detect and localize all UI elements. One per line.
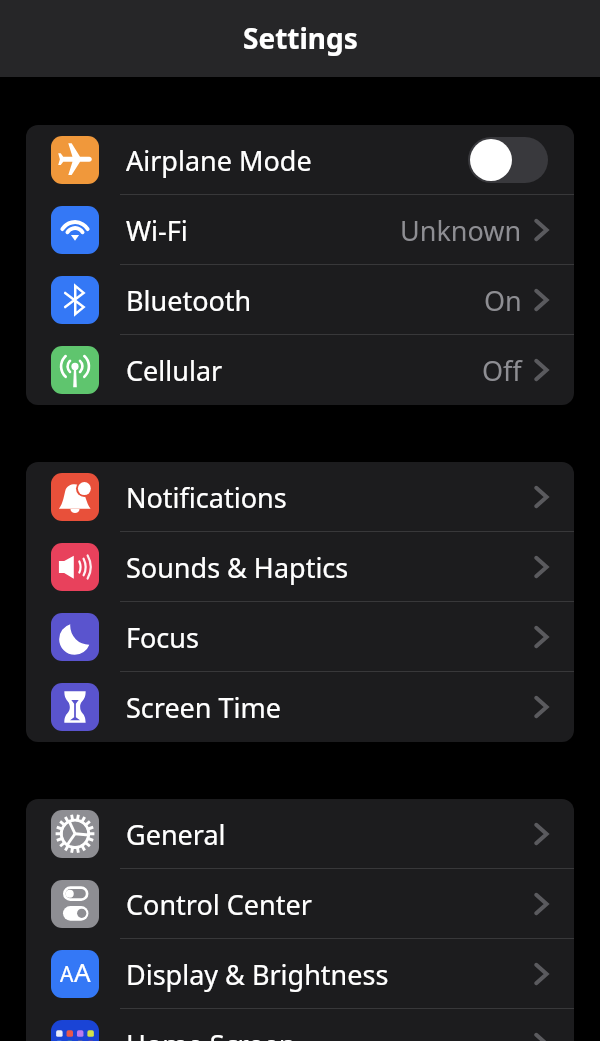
staticText: Off xyxy=(482,352,522,389)
button[interactable]: Wi-Fi xyxy=(26,195,574,265)
staticText: A xyxy=(74,954,91,989)
staticText: On xyxy=(484,282,522,319)
staticText: Notifications xyxy=(126,479,287,516)
staticText: Home Screen xyxy=(126,1026,296,1041)
staticText: Focus xyxy=(126,619,199,656)
staticText: Cellular xyxy=(126,352,223,389)
button[interactable]: Cellular xyxy=(26,335,574,405)
staticText: Airplane Mode xyxy=(126,142,312,179)
staticText: A xyxy=(60,960,74,989)
button[interactable]: A xyxy=(26,939,574,1009)
staticText: Unknown xyxy=(400,212,522,249)
button[interactable]: Airplane Mode xyxy=(26,125,574,195)
button[interactable]: Airplane Mode toggle xyxy=(468,137,548,183)
staticText: General xyxy=(126,816,226,853)
button[interactable]: General xyxy=(26,799,574,869)
button[interactable]: Control Center xyxy=(26,869,574,939)
staticText: Display & Brightness xyxy=(126,956,389,993)
button[interactable]: Bluetooth xyxy=(26,265,574,335)
button[interactable]: Notifications xyxy=(26,462,574,532)
staticText: Control Center xyxy=(126,886,312,923)
staticText: Settings xyxy=(243,19,358,57)
staticText: Bluetooth xyxy=(126,282,252,319)
staticText: Sounds & Haptics xyxy=(126,549,349,586)
button[interactable]: Sounds & Haptics xyxy=(26,532,574,602)
button[interactable]: Screen Time xyxy=(26,672,574,742)
staticText: Wi-Fi xyxy=(126,212,188,249)
button[interactable]: Focus xyxy=(26,602,574,672)
staticText: Screen Time xyxy=(126,689,282,726)
button[interactable]: Home Screen xyxy=(26,1009,574,1041)
